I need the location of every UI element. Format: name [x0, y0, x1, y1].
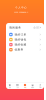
button[interactable]: 我的钱包: [6, 37, 44, 42]
staticText: 我的: [39, 87, 41, 88]
button[interactable]: 全部: [33, 26, 41, 29]
staticText: 购物车: [31, 87, 34, 88]
staticText: 分类: [16, 87, 18, 88]
staticText: 优惠券: [14, 48, 23, 51]
staticText: 我的订单: [14, 33, 26, 36]
button[interactable]: 发现: [21, 83, 29, 89]
staticText: 我的收藏: [14, 43, 26, 46]
button[interactable]: 购物车: [29, 83, 36, 89]
button[interactable]: 首页: [6, 83, 14, 89]
button[interactable]: 我的: [36, 83, 44, 89]
staticText: 发现: [24, 87, 26, 88]
staticText: 欢迎回来，祝您购物愉快每一天: [14, 11, 28, 13]
staticText: 我的服务: [9, 26, 21, 29]
button[interactable]: 我的收藏: [6, 42, 44, 47]
button[interactable]: 优惠券: [6, 47, 44, 52]
button[interactable]: 我的订单: [6, 32, 44, 37]
staticText: 全部: [33, 26, 39, 29]
button[interactable]: 分类: [14, 83, 21, 89]
staticText: 个人中心: [15, 6, 27, 9]
staticText: 我的钱包: [14, 38, 26, 41]
